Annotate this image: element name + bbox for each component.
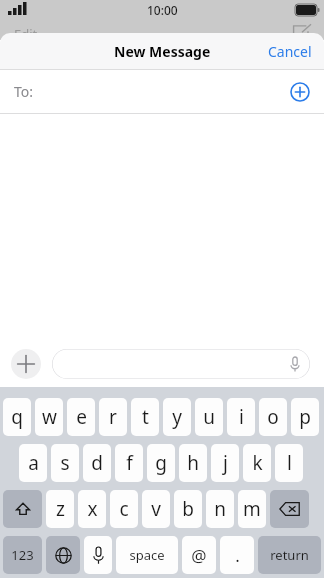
button[interactable]: y <box>163 398 191 436</box>
button[interactable]: a <box>19 444 47 482</box>
staticText: i <box>239 404 244 430</box>
staticText: e <box>76 404 87 430</box>
button[interactable]: l <box>275 444 303 482</box>
button[interactable]: p <box>291 398 319 436</box>
staticText: f <box>126 450 133 476</box>
staticText: r <box>109 404 117 430</box>
staticText: t <box>142 404 149 430</box>
staticText: space <box>129 546 165 564</box>
button[interactable]: space <box>116 536 178 574</box>
button[interactable]: z <box>46 490 74 528</box>
button[interactable]: w <box>35 398 63 436</box>
staticText: g <box>155 450 167 476</box>
button[interactable]: f <box>115 444 143 482</box>
staticText: Cancel <box>268 42 312 61</box>
button[interactable]: h <box>179 444 207 482</box>
button[interactable]: . <box>220 536 254 574</box>
button[interactable]: c <box>110 490 138 528</box>
button[interactable]: x <box>78 490 106 528</box>
button[interactable]: k <box>243 444 271 482</box>
button[interactable]: m <box>238 490 266 528</box>
staticText: 10:00 <box>147 2 178 18</box>
staticText: n <box>214 496 226 522</box>
button[interactable]: n <box>206 490 234 528</box>
button[interactable]: return <box>258 536 321 574</box>
button[interactable]: Backspace <box>270 490 309 528</box>
staticText: j <box>223 450 228 476</box>
button[interactable]: 123 <box>3 536 42 574</box>
staticText: . <box>235 544 240 567</box>
button[interactable] <box>52 349 310 379</box>
staticText: c <box>119 496 129 522</box>
staticText: k <box>252 450 263 476</box>
button[interactable]: o <box>259 398 287 436</box>
button[interactable]: Add attachment <box>11 349 41 379</box>
button[interactable]: v <box>142 490 170 528</box>
staticText: o <box>267 404 279 430</box>
staticText: Edit <box>14 25 38 43</box>
staticText: u <box>203 404 215 430</box>
staticText: w <box>42 404 57 430</box>
button[interactable]: Shift <box>3 490 42 528</box>
button[interactable]: d <box>83 444 111 482</box>
staticText: To: <box>14 82 34 101</box>
button[interactable]: s <box>51 444 79 482</box>
staticText: b <box>182 496 194 522</box>
button[interactable]: Cancel <box>264 38 316 65</box>
staticText: h <box>187 450 199 476</box>
button[interactable]: Switch keyboard <box>46 536 80 574</box>
staticText: z <box>56 496 65 522</box>
staticText: d <box>91 450 103 476</box>
button[interactable]: i <box>227 398 255 436</box>
staticText: q <box>11 404 23 430</box>
button[interactable]: e <box>67 398 95 436</box>
staticText: a <box>28 450 39 476</box>
staticText: s <box>60 450 70 476</box>
button[interactable]: g <box>147 444 175 482</box>
button[interactable]: Add contact <box>290 82 310 102</box>
button[interactable]: @ <box>182 536 216 574</box>
staticText: x <box>87 496 98 522</box>
staticText: @ <box>191 544 207 567</box>
staticText: l <box>287 450 292 476</box>
staticText: New Message <box>114 42 211 61</box>
button[interactable]: b <box>174 490 202 528</box>
staticText: p <box>299 404 311 430</box>
button[interactable]: t <box>131 398 159 436</box>
staticText: y <box>172 404 182 430</box>
button[interactable]: Dictation <box>84 536 112 574</box>
staticText: return <box>270 546 309 564</box>
button[interactable]: u <box>195 398 223 436</box>
button[interactable]: j <box>211 444 239 482</box>
staticText: 123 <box>11 546 34 564</box>
button[interactable]: r <box>99 398 127 436</box>
button[interactable]: q <box>3 398 31 436</box>
staticText: m <box>243 496 261 522</box>
staticText: v <box>151 496 161 522</box>
button[interactable]: To: <box>0 70 324 113</box>
